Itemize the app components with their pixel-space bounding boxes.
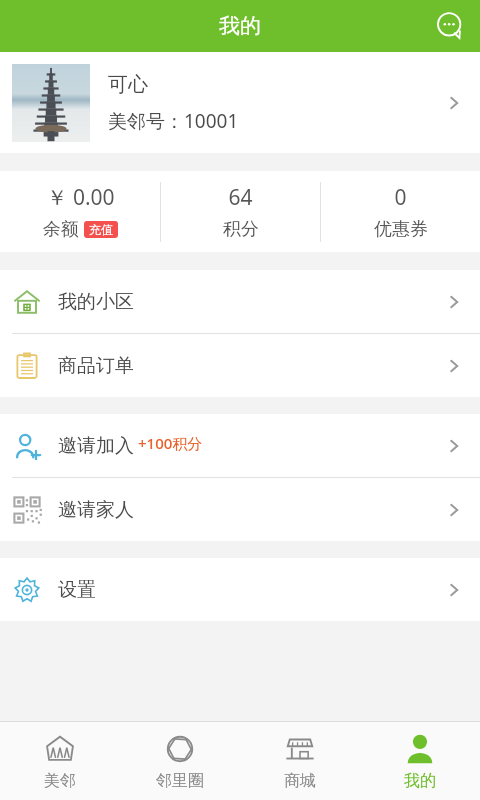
staticText: 邻里圈 [156, 771, 204, 791]
button[interactable]: 邀请加入 [0, 414, 480, 477]
button[interactable]: 商城 [240, 722, 360, 800]
staticText: 可心 [108, 72, 148, 97]
button[interactable]: 邀请家人 [0, 478, 480, 541]
button[interactable]: ￥ 0.00 [0, 171, 160, 252]
staticText: 设置 [58, 578, 96, 602]
button[interactable]: 可心 [0, 52, 480, 153]
button[interactable]: 我的小区 [0, 270, 480, 333]
staticText: 充值 [89, 222, 113, 237]
button[interactable]: 商品订单 [0, 334, 480, 397]
staticText: 邀请家人 [58, 498, 134, 522]
button[interactable]: 邻里圈 [120, 722, 240, 800]
staticText: +100积分 [138, 433, 203, 453]
staticText: 我的 [219, 13, 261, 39]
button[interactable]: 美邻 [0, 722, 120, 800]
staticText: 邀请加入 [58, 434, 134, 458]
staticText: 64 [228, 183, 253, 212]
staticText: 美邻 [44, 771, 76, 791]
staticText: 优惠券 [374, 218, 428, 241]
button[interactable]: 64 [161, 171, 320, 252]
staticText: 我的 [404, 771, 436, 791]
button[interactable]: 我的 [360, 722, 480, 800]
staticText: 商品订单 [58, 354, 134, 378]
button[interactable]: 设置 [0, 558, 480, 621]
staticText: 美邻号：10001 [108, 108, 239, 134]
staticText: ￥ 0.00 [46, 183, 115, 212]
staticText: 余额 [43, 218, 79, 241]
staticText: 0 [394, 183, 407, 212]
button[interactable]: Messages [428, 4, 472, 48]
staticText: 我的小区 [58, 290, 134, 314]
staticText: 积分 [223, 218, 259, 241]
staticText: 商城 [284, 771, 316, 791]
button[interactable]: 0 [321, 171, 480, 252]
